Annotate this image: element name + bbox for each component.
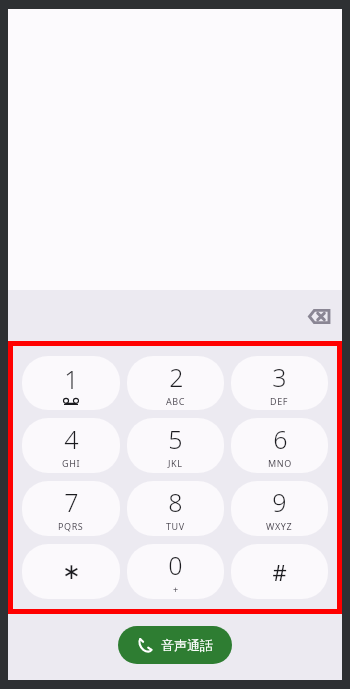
staticText: 3	[272, 360, 287, 394]
button[interactable]: #	[231, 544, 328, 599]
staticText: #	[272, 557, 287, 587]
button[interactable]: 6	[231, 418, 328, 473]
staticText: PQRS	[58, 520, 84, 532]
staticText: 音声通話	[161, 637, 213, 653]
button[interactable]: 5	[127, 418, 224, 473]
staticText: 9	[272, 485, 287, 519]
staticText: JKL	[168, 457, 183, 469]
staticText: TUV	[166, 520, 185, 532]
staticText: 6	[273, 422, 288, 456]
staticText: 4	[64, 422, 79, 456]
button[interactable]: 8	[127, 481, 224, 536]
button[interactable]: ∗	[22, 544, 120, 599]
staticText: 0	[168, 548, 183, 582]
button[interactable]: 7	[22, 481, 120, 536]
staticText: ∗	[62, 559, 81, 585]
button[interactable]: 0	[127, 544, 224, 599]
button[interactable]: Backspace	[300, 298, 336, 334]
staticText: WXYZ	[266, 520, 293, 532]
staticText: 2	[169, 360, 184, 394]
staticText: MNO	[268, 457, 292, 469]
staticText: GHI	[62, 457, 81, 469]
button[interactable]: 2	[127, 356, 224, 410]
button[interactable]: 音声通話	[118, 626, 232, 664]
staticText: 8	[168, 485, 183, 519]
staticText: +	[173, 583, 179, 595]
button[interactable]: 3	[231, 356, 328, 410]
button[interactable]: 1	[22, 356, 120, 410]
staticText: 1	[64, 362, 79, 396]
staticText: DEF	[270, 395, 289, 407]
button[interactable]: 4	[22, 418, 120, 473]
staticText: 5	[168, 422, 183, 456]
staticText: ABC	[166, 395, 186, 407]
button[interactable]: 9	[231, 481, 328, 536]
staticText: 7	[64, 485, 79, 519]
